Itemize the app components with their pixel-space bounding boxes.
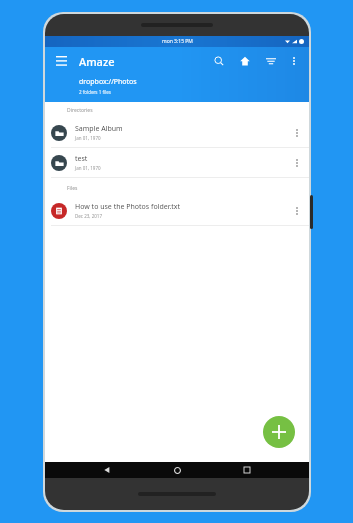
button[interactable]: Sort xyxy=(262,52,280,70)
button[interactable]: Item options xyxy=(290,204,304,218)
button[interactable]: More options xyxy=(286,53,302,69)
button[interactable]: Home xyxy=(236,52,254,70)
button[interactable]: Add xyxy=(263,416,295,448)
button[interactable]: Item options xyxy=(290,156,304,170)
staticText: Directories xyxy=(67,107,93,114)
button[interactable]: Search xyxy=(210,52,228,70)
button[interactable]: Recent apps xyxy=(239,462,255,478)
other: Add xyxy=(272,425,286,439)
staticText: mon 3:15 PM xyxy=(162,38,193,45)
staticText: Files xyxy=(67,185,78,192)
staticText: Sample Album xyxy=(75,124,123,134)
staticText: Dec 23, 2017 xyxy=(75,213,102,219)
staticText: dropbox://Photos xyxy=(79,77,137,87)
staticText: 2 folders 1 files xyxy=(79,89,111,95)
button[interactable]: How to use the Photos folder.txt xyxy=(45,196,309,226)
button[interactable]: Home xyxy=(169,462,185,478)
button[interactable]: Back xyxy=(99,462,115,478)
button[interactable]: test xyxy=(45,148,309,178)
staticText: Jan 01, 1970 xyxy=(75,165,101,171)
button[interactable]: Item options xyxy=(290,126,304,140)
staticText: Amaze xyxy=(79,54,115,69)
button[interactable]: Sample Album xyxy=(45,118,309,148)
button[interactable]: Menu xyxy=(52,52,70,70)
staticText: test xyxy=(75,154,88,164)
staticText: How to use the Photos folder.txt xyxy=(75,202,181,212)
staticText: Jan 01, 1970 xyxy=(75,135,101,141)
